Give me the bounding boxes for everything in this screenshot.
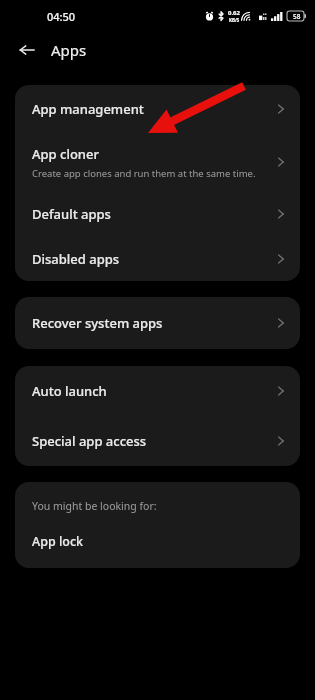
- button[interactable]: App cloner: [15, 133, 300, 191]
- button[interactable]: App management: [15, 85, 300, 133]
- button[interactable]: App lock: [15, 528, 300, 554]
- staticText: Default apps: [32, 205, 111, 223]
- staticText: Apps: [51, 40, 87, 60]
- staticText: Special app access: [32, 432, 147, 450]
- button[interactable]: Default apps: [15, 191, 300, 236]
- button[interactable]: Special app access: [15, 416, 300, 466]
- staticText: 0.62: [228, 9, 240, 17]
- staticText: Create app clones and run them at the sa…: [32, 167, 256, 180]
- staticText: App management: [32, 100, 144, 118]
- button[interactable]: Disabled apps: [15, 236, 300, 281]
- staticText: 04:50: [47, 9, 76, 24]
- staticText: App lock: [32, 533, 84, 550]
- staticText: Auto launch: [32, 382, 107, 400]
- staticText: KB/S: [229, 17, 240, 23]
- staticText: App cloner: [32, 145, 99, 163]
- button[interactable]: Auto launch: [15, 366, 300, 416]
- staticText: Recover system apps: [32, 314, 163, 332]
- button[interactable]: Back: [13, 36, 41, 64]
- staticText: You might be looking for:: [32, 499, 157, 513]
- staticText: Disabled apps: [32, 250, 120, 268]
- button[interactable]: Recover system apps: [15, 297, 300, 349]
- staticText: 58: [293, 12, 301, 21]
